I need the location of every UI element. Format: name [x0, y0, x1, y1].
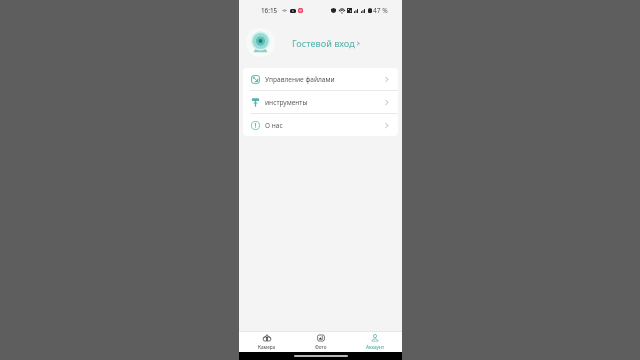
- staticText: Камера: [258, 344, 276, 350]
- staticText: 47 %: [373, 6, 388, 15]
- staticText: инструменты: [265, 98, 308, 107]
- button[interactable]: Управление файлами: [243, 68, 398, 90]
- button[interactable]: Аккаунт: [348, 332, 402, 352]
- staticText: Управление файлами: [265, 75, 335, 84]
- staticText: Аккаунт: [366, 344, 385, 350]
- button[interactable]: Фото: [294, 332, 348, 352]
- staticText: 16:15: [261, 6, 278, 15]
- button[interactable]: инструменты: [243, 91, 398, 113]
- button[interactable]: Камера: [239, 332, 294, 352]
- button[interactable]: Аватар профиля: [246, 28, 275, 57]
- staticText: Гостевой вход: [292, 37, 355, 50]
- staticText: Фото: [315, 344, 327, 350]
- staticText: О нас: [265, 121, 283, 130]
- button[interactable]: О нас: [243, 114, 398, 136]
- button[interactable]: Гостевой вход: [292, 33, 362, 53]
